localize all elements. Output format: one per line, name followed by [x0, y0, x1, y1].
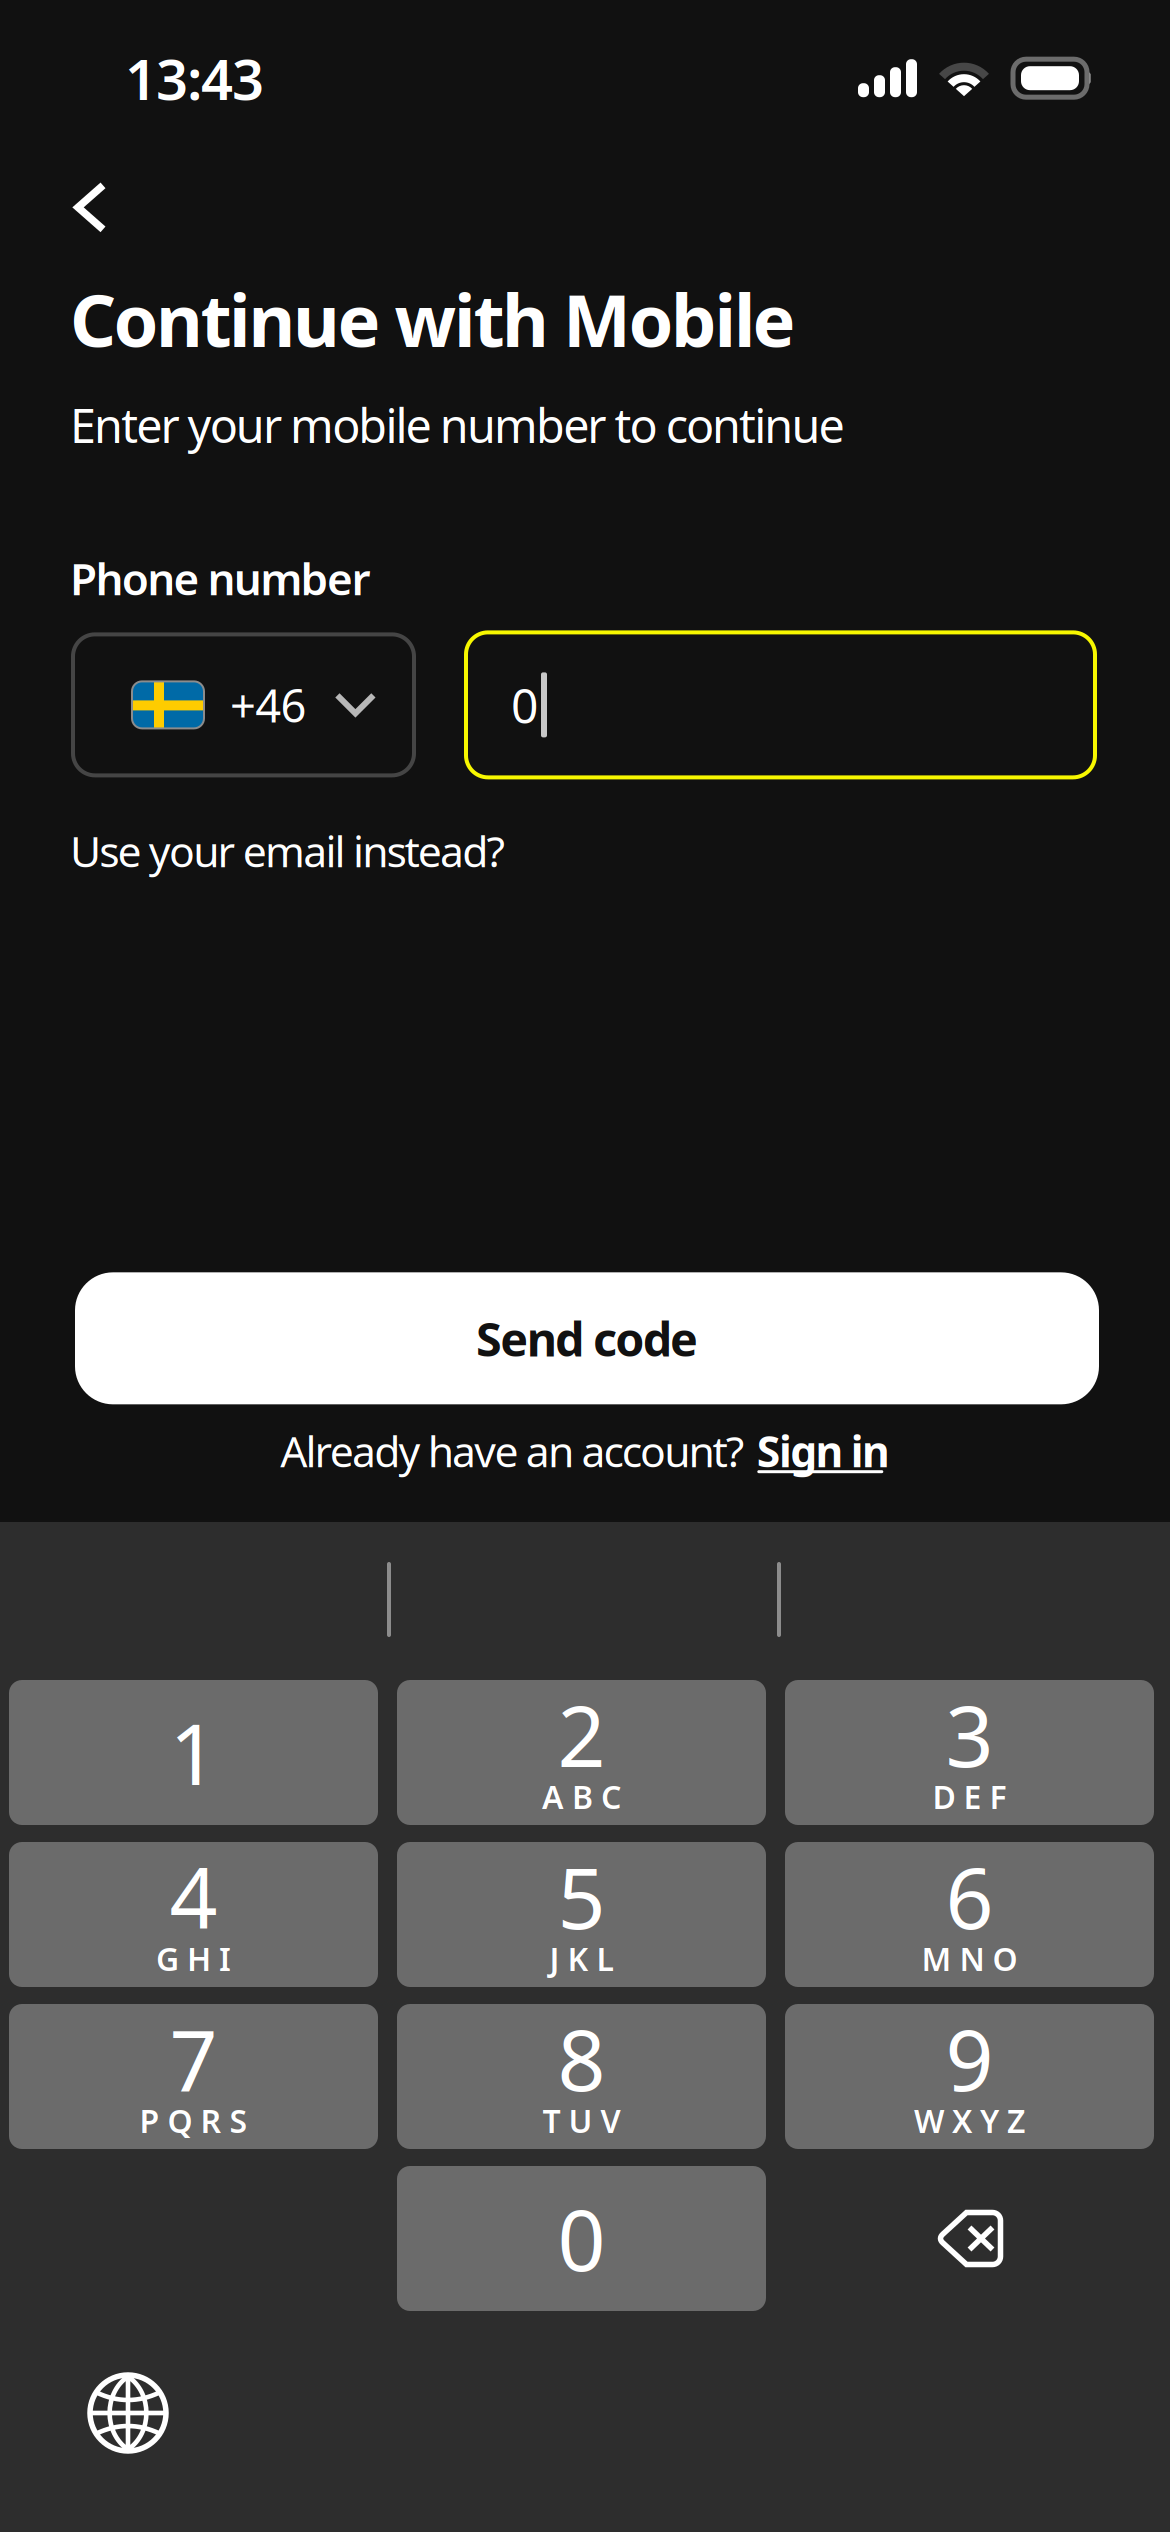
- staticText: Phone number: [70, 549, 370, 607]
- staticText: Sign in: [757, 1422, 890, 1479]
- staticText: 8: [557, 2003, 605, 2114]
- button[interactable]: 6: [785, 1842, 1154, 1987]
- button[interactable]: 0: [397, 2166, 766, 2311]
- staticText: Enter your mobile number to continue: [70, 394, 844, 456]
- button[interactable]: 7: [9, 2004, 378, 2149]
- button[interactable]: Delete: [785, 2166, 1154, 2311]
- button[interactable]: 5: [397, 1842, 766, 1987]
- staticText: GHI: [156, 1937, 231, 1980]
- staticText: PQRS: [139, 2099, 247, 2142]
- button[interactable]: 1: [9, 1680, 378, 1825]
- button[interactable]: Use your email instead?: [70, 822, 505, 879]
- staticText: TUV: [542, 2099, 620, 2142]
- button[interactable]: 0: [466, 632, 1095, 777]
- button[interactable]: 4: [9, 1842, 378, 1987]
- button[interactable]: Back: [74, 177, 144, 237]
- staticText: +46: [230, 675, 306, 735]
- staticText: 4: [169, 1841, 217, 1952]
- staticText: 9: [945, 2003, 993, 2114]
- staticText: MNO: [921, 1937, 1017, 1980]
- staticText: 13:43: [125, 41, 264, 115]
- staticText: WXYZ: [914, 2099, 1025, 2142]
- staticText: 1: [169, 1697, 217, 1808]
- staticText: Send code: [476, 1307, 698, 1369]
- staticText: Continue with Mobile: [70, 271, 795, 367]
- staticText: 6: [945, 1841, 993, 1952]
- staticText: Already have an account?: [280, 1422, 745, 1479]
- button[interactable]: 3: [785, 1680, 1154, 1825]
- staticText: Use your email instead?: [70, 822, 505, 879]
- button[interactable]: 8: [397, 2004, 766, 2149]
- button[interactable]: 9: [785, 2004, 1154, 2149]
- staticText: 2: [557, 1679, 605, 1790]
- staticText: 3: [945, 1679, 993, 1790]
- staticText: 5: [557, 1841, 605, 1952]
- staticText: DEF: [932, 1775, 1006, 1818]
- button[interactable]: +46: [73, 634, 414, 775]
- button[interactable]: Send code: [75, 1272, 1099, 1404]
- button[interactable]: Switch keyboard: [78, 2363, 178, 2463]
- staticText: 7: [169, 2003, 217, 2114]
- staticText: ABC: [542, 1775, 621, 1818]
- button[interactable]: 2: [397, 1680, 766, 1825]
- staticText: JKL: [549, 1937, 613, 1980]
- button[interactable]: Sign in: [757, 1423, 890, 1479]
- staticText: 0: [511, 673, 538, 737]
- staticText: 0: [557, 2183, 605, 2294]
